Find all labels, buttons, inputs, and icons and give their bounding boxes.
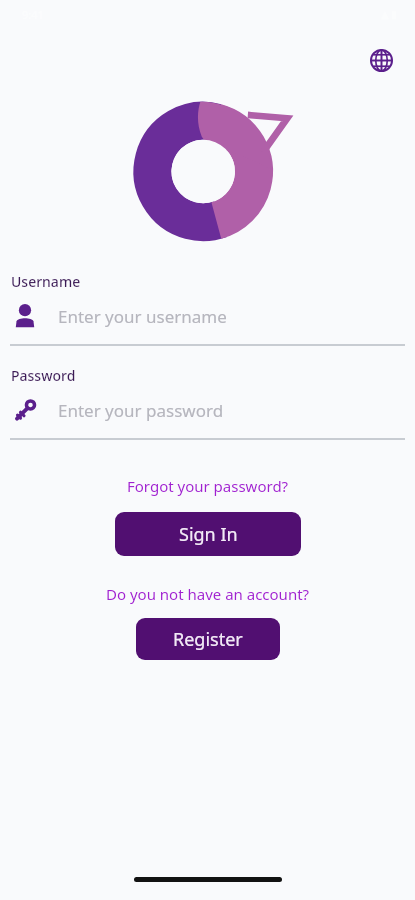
other: Username (11, 302, 39, 330)
button[interactable]: Sign In (115, 512, 301, 556)
button[interactable]: Password (0, 393, 415, 427)
button[interactable]: Username (0, 299, 415, 333)
button[interactable]: Forgot your password? (117, 472, 299, 500)
staticText: Sign In (179, 522, 238, 547)
staticText: Username (11, 272, 81, 291)
staticText: Do you not have an account? (106, 584, 310, 604)
button[interactable]: Register (136, 618, 280, 660)
staticText: Enter your username (58, 305, 227, 328)
other: Password (11, 396, 39, 424)
staticText: Forgot your password? (127, 476, 289, 496)
button[interactable]: Change language (363, 42, 399, 78)
button[interactable]: Do you not have an account? (96, 580, 320, 608)
staticText: Enter your password (58, 399, 224, 422)
staticText: Password (11, 366, 76, 385)
staticText: Register (173, 627, 243, 652)
